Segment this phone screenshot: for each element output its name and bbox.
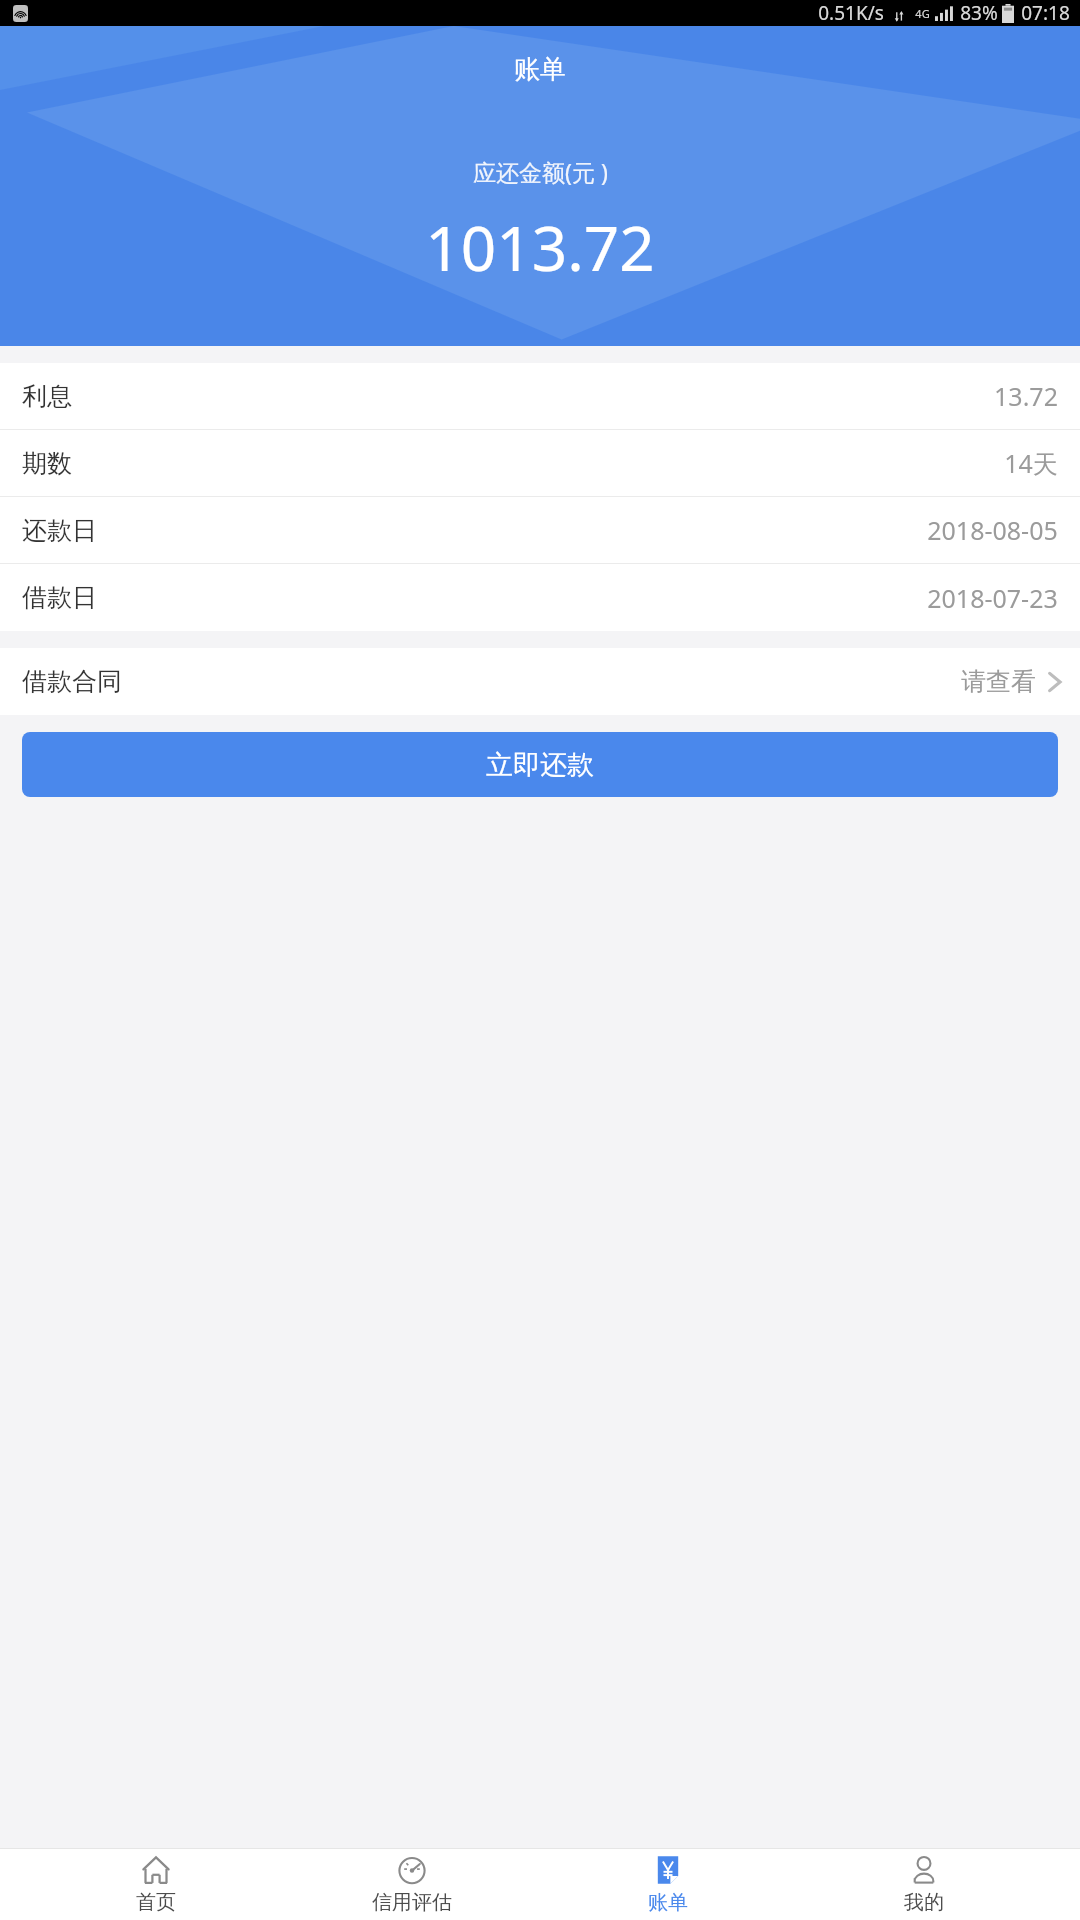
staticText: 利息	[22, 381, 72, 412]
button[interactable]: 我的	[824, 1855, 1024, 1915]
staticText: 2018-07-23	[927, 581, 1058, 615]
button[interactable]: 借款合同	[0, 648, 1080, 715]
staticText: 07:18	[1021, 0, 1070, 26]
staticText: 我的	[904, 1890, 944, 1915]
button[interactable]: 信用评估	[312, 1855, 512, 1915]
staticText: 0.51K/s	[818, 0, 884, 26]
staticText: 账单	[648, 1890, 688, 1915]
staticText: 信用评估	[372, 1890, 452, 1915]
button[interactable]: 账单	[568, 1855, 768, 1915]
staticText: 借款日	[22, 582, 97, 613]
button[interactable]: 首页	[56, 1855, 256, 1915]
staticText: 请查看	[961, 666, 1036, 697]
staticText: 还款日	[22, 515, 97, 546]
staticText: 应还金额(元 )	[473, 156, 608, 187]
staticText: 4G	[915, 6, 930, 21]
staticText: 期数	[22, 448, 72, 479]
staticText: 立即还款	[486, 748, 594, 782]
staticText: 账单	[514, 53, 566, 86]
button[interactable]: 期数	[0, 430, 1080, 497]
staticText: 13.72	[994, 379, 1058, 413]
button[interactable]: 还款日	[0, 497, 1080, 564]
staticText: 借款合同	[22, 666, 122, 697]
staticText: 首页	[136, 1890, 176, 1915]
staticText: 83%	[960, 0, 998, 26]
staticText: 14天	[1004, 446, 1058, 480]
button[interactable]: 立即还款	[22, 732, 1058, 797]
button[interactable]: 借款日	[0, 564, 1080, 631]
button[interactable]: 利息	[0, 363, 1080, 430]
staticText: 2018-08-05	[927, 513, 1058, 547]
staticText: 1013.72	[425, 205, 655, 289]
